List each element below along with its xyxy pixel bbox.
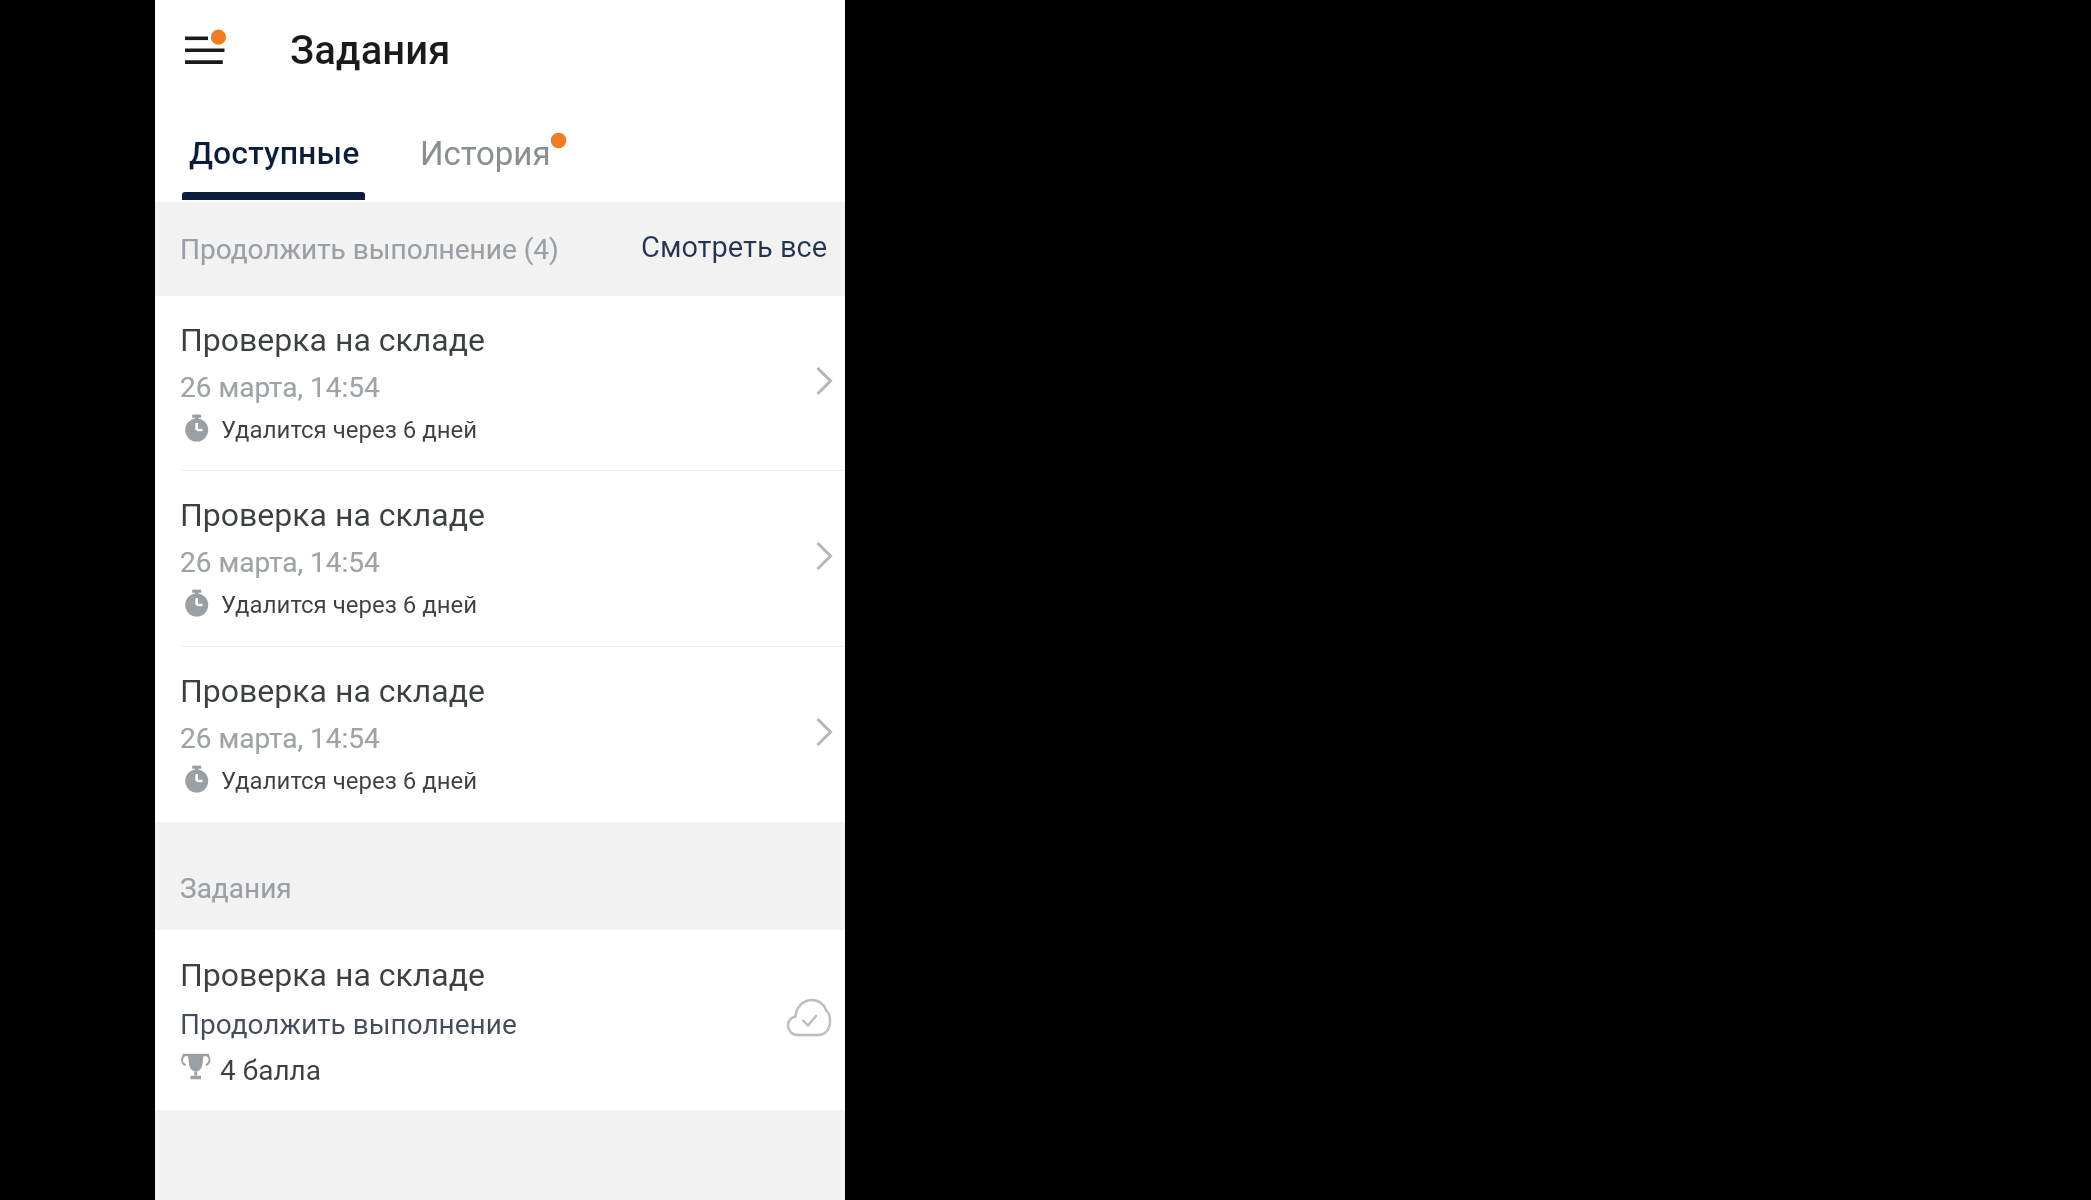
staticText: Доступные bbox=[189, 134, 360, 172]
other: Синхронизировано bbox=[786, 994, 834, 1042]
staticText: 26 марта, 14:54 bbox=[180, 722, 380, 755]
staticText: Проверка на складе bbox=[180, 321, 485, 359]
staticText: Смотреть все bbox=[641, 230, 828, 264]
button[interactable]: История bbox=[400, 110, 565, 202]
button[interactable]: Проверка на складе bbox=[155, 471, 845, 647]
staticText: Продолжить выполнение bbox=[180, 1008, 517, 1041]
staticText: Проверка на складе bbox=[180, 496, 485, 534]
staticText: 4 балла bbox=[220, 1054, 322, 1087]
staticText: Удалится через 6 дней bbox=[221, 591, 478, 619]
staticText: Удалится через 6 дней bbox=[221, 767, 478, 795]
staticText: 26 марта, 14:54 bbox=[180, 371, 380, 404]
staticText: Проверка на складе bbox=[180, 956, 485, 994]
staticText: Задания bbox=[290, 27, 451, 74]
button[interactable]: Проверка на складе bbox=[155, 296, 845, 471]
button[interactable]: Доступные bbox=[182, 110, 365, 202]
staticText: История bbox=[420, 134, 551, 173]
button[interactable]: Меню bbox=[169, 10, 235, 76]
button[interactable]: Проверка на складе bbox=[155, 647, 845, 822]
staticText: 26 марта, 14:54 bbox=[180, 546, 380, 579]
staticText: Задания bbox=[180, 872, 292, 905]
staticText: Продолжить выполнение (4) bbox=[180, 233, 559, 266]
staticText: Проверка на складе bbox=[180, 672, 485, 710]
button[interactable]: Проверка на складе bbox=[155, 930, 845, 1110]
staticText: Удалится через 6 дней bbox=[221, 416, 478, 444]
button[interactable]: Смотреть все bbox=[629, 220, 840, 274]
